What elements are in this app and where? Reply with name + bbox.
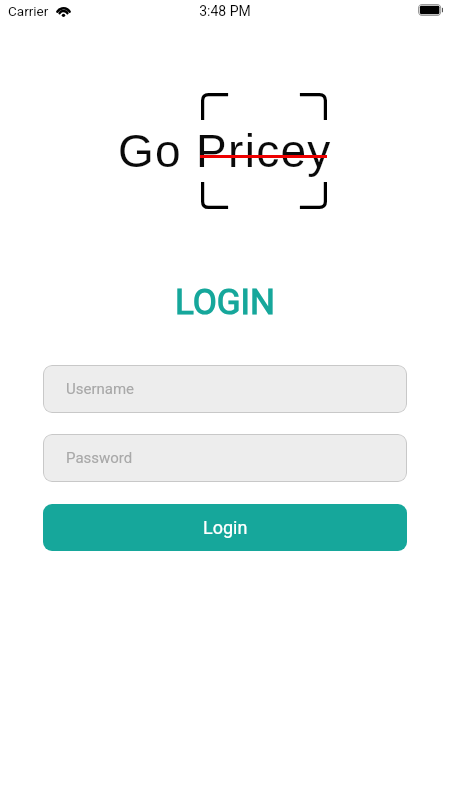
staticText: LOGIN xyxy=(0,282,450,323)
button[interactable]: Login xyxy=(43,504,407,551)
staticText: 3:48 PM xyxy=(0,3,450,19)
button[interactable]: Password xyxy=(43,434,407,482)
staticText: Carrier xyxy=(8,3,49,19)
other: Go Pricey logo xyxy=(201,93,327,209)
staticText: Username xyxy=(66,380,135,398)
staticText: Go Pricey xyxy=(118,125,332,176)
button[interactable]: Username xyxy=(43,365,407,413)
staticText: Password xyxy=(66,449,133,467)
staticText: Login xyxy=(203,517,248,538)
